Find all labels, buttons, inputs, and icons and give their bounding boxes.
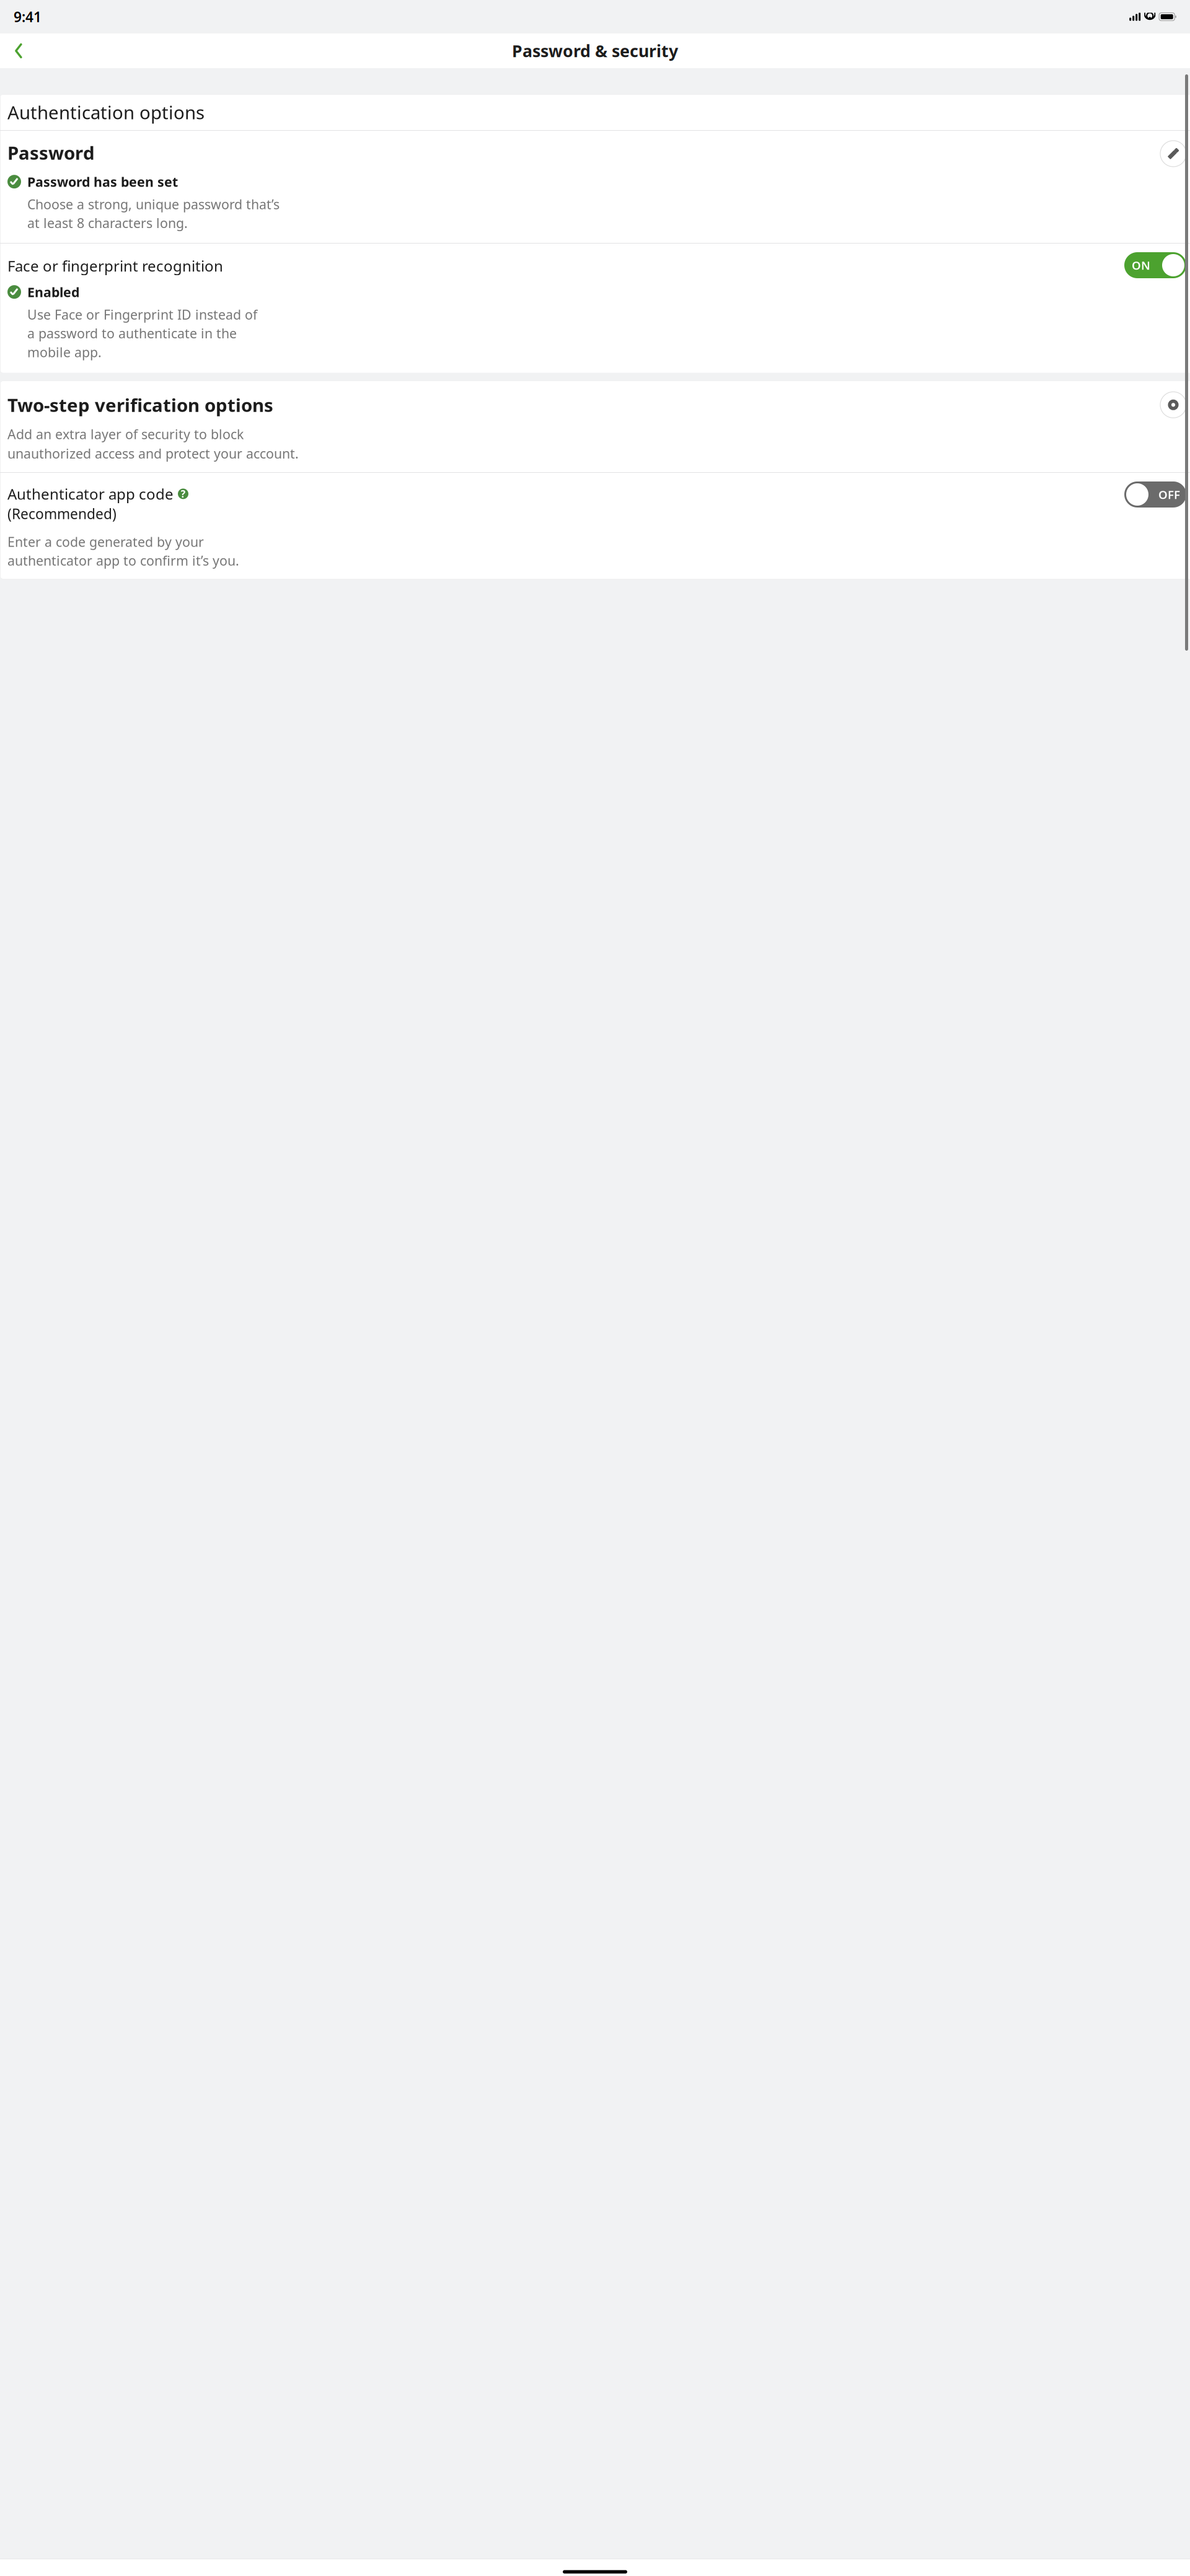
staticText: Password [7, 141, 95, 165]
button[interactable]: Face or fingerprint recognition [0, 244, 1190, 373]
staticText: Authentication options [7, 100, 205, 124]
staticText: Add an extra layer of security to block [7, 425, 244, 443]
staticText: OFF [1158, 487, 1180, 502]
button[interactable]: Turn off [1124, 252, 1186, 278]
staticText: unauthorized access and protect your acc… [7, 445, 299, 462]
button[interactable]: Authenticator app code [0, 473, 1190, 579]
staticText: ON [1132, 258, 1150, 273]
button[interactable]: Two-step verification settings [1160, 392, 1186, 418]
staticText: Authenticator app code [7, 484, 174, 504]
staticText: Password & security [512, 40, 678, 62]
staticText: Use Face or Fingerprint ID instead of [27, 306, 257, 323]
button[interactable]: Authentication options [0, 94, 1190, 130]
staticText: mobile app. [27, 343, 102, 361]
staticText: Two-step verification options [7, 393, 273, 417]
button[interactable]: Edit password [1160, 141, 1186, 167]
staticText: Enter a code generated by your [7, 533, 204, 550]
button[interactable]: Two-step verification options [0, 381, 1190, 472]
staticText: Face or fingerprint recognition [7, 256, 223, 276]
staticText: 9:41 [14, 7, 42, 26]
staticText: (Recommended) [7, 504, 117, 523]
staticText: at least 8 characters long. [27, 214, 188, 232]
staticText: authenticator app to confirm it’s you. [7, 552, 239, 569]
staticText: Enabled [27, 283, 79, 301]
button[interactable]: Turn on [1124, 481, 1186, 508]
staticText: ? [181, 487, 186, 500]
staticText: a password to authenticate in the [27, 325, 237, 342]
staticText: Password has been set [27, 173, 178, 190]
button[interactable]: Password [0, 131, 1190, 243]
staticText: Choose a strong, unique password that’s [27, 195, 280, 213]
button[interactable]: Back [5, 37, 32, 64]
